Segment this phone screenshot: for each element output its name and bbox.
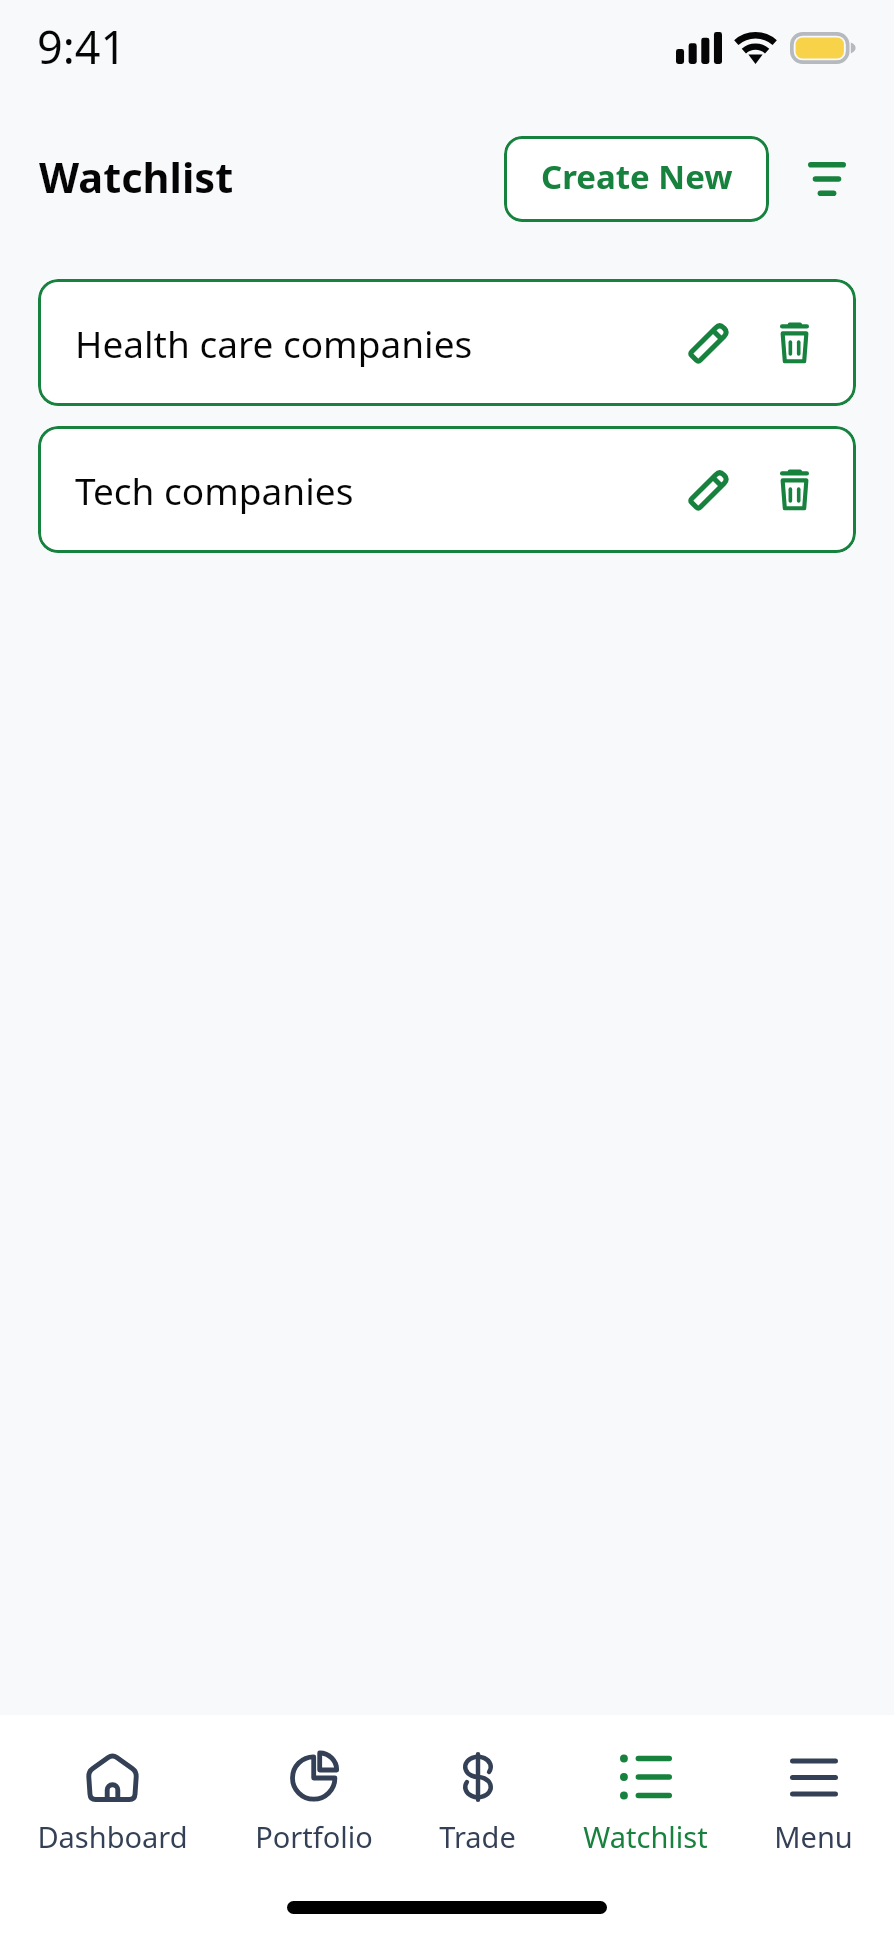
staticText: Portfolio — [255, 1817, 373, 1856]
staticText: 9:41 — [37, 16, 127, 77]
button[interactable]: Filter — [783, 134, 871, 224]
staticText: Create New — [541, 154, 733, 199]
button[interactable]: Menu — [774, 1751, 853, 1856]
button[interactable]: Edit — [670, 304, 748, 382]
staticText: Menu — [774, 1817, 853, 1856]
button[interactable]: Edit — [670, 451, 748, 529]
button[interactable]: Tech companies — [38, 426, 856, 553]
button[interactable]: Create New — [504, 136, 769, 222]
staticText: Health care companies — [75, 318, 473, 368]
staticText: Watchlist — [39, 149, 234, 206]
staticText: Dashboard — [37, 1817, 188, 1856]
button[interactable]: Health care companies — [38, 279, 856, 406]
staticText: Tech companies — [75, 465, 354, 515]
button[interactable]: Trade — [439, 1751, 516, 1856]
staticText: Watchlist — [583, 1817, 708, 1856]
button[interactable]: Portfolio — [255, 1751, 373, 1856]
button[interactable]: Watchlist — [583, 1751, 708, 1856]
button[interactable]: Delete — [755, 451, 833, 529]
button[interactable]: Dashboard — [37, 1751, 188, 1856]
button[interactable]: Delete — [755, 304, 833, 382]
staticText: Trade — [439, 1817, 516, 1856]
